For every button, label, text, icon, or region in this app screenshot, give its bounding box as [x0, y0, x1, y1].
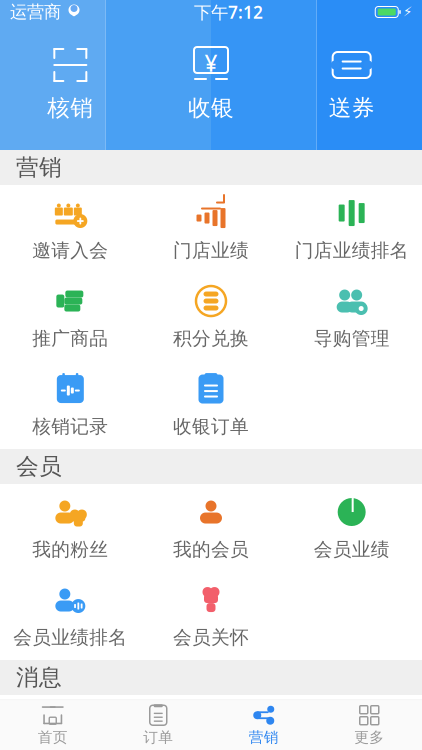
button[interactable]: 更多 — [316, 700, 422, 750]
staticText: 收银 — [188, 94, 234, 122]
staticText: 消息 — [16, 664, 62, 691]
staticText: 送券 — [329, 94, 375, 122]
button[interactable]: 积分兑换 — [141, 273, 281, 361]
staticText: 会员关怀 — [173, 626, 249, 649]
button[interactable]: 首页 — [0, 700, 105, 750]
button[interactable]: ¥ — [141, 40, 281, 128]
staticText: 积分兑换 — [173, 327, 249, 350]
staticText: 会员业绩 — [314, 538, 390, 561]
staticText: 核销记录 — [32, 415, 108, 438]
staticText: ⚡︎ — [403, 4, 412, 19]
button[interactable]: 门店业绩排名 — [281, 185, 422, 273]
staticText: ¥ — [204, 48, 217, 78]
button[interactable]: 收银订单 — [141, 361, 281, 449]
staticText: 会员业绩排名 — [13, 626, 127, 649]
staticText: 推广商品 — [32, 327, 108, 350]
staticText: 收银订单 — [173, 415, 249, 438]
staticText: 首页 — [38, 728, 68, 746]
button[interactable]: 导购管理 — [281, 273, 422, 361]
staticText: 更多 — [354, 728, 384, 746]
button[interactable]: 门店业绩 — [141, 185, 281, 273]
button[interactable]: 核销记录 — [0, 361, 141, 449]
button[interactable]: 送券 — [281, 40, 422, 128]
button[interactable]: 我的会员 — [141, 484, 281, 572]
staticText: 核销 — [47, 94, 93, 122]
button[interactable]: 推广商品 — [0, 273, 141, 361]
staticText: 会员 — [16, 453, 62, 480]
staticText: 我的会员 — [173, 538, 249, 561]
button[interactable]: 我的粉丝 — [0, 484, 141, 572]
staticText: 我的粉丝 — [32, 538, 108, 561]
button[interactable]: 订单 — [105, 700, 211, 750]
staticText: 营销 — [249, 728, 279, 746]
staticText: 订单 — [143, 728, 173, 746]
button[interactable]: 核销 — [0, 40, 141, 128]
staticText: 营销 — [16, 154, 62, 181]
staticText: 门店业绩 — [173, 239, 249, 262]
button[interactable]: 会员关怀 — [141, 572, 281, 660]
staticText: 门店业绩排名 — [295, 239, 409, 262]
staticText: 运营商 — [10, 1, 61, 23]
staticText: 邀请入会 — [32, 239, 108, 262]
button[interactable]: 邀请入会 — [0, 185, 141, 273]
staticText: 下午7:12 — [194, 0, 263, 23]
staticText: 导购管理 — [314, 327, 390, 350]
button[interactable]: 会员业绩排名 — [0, 572, 141, 660]
button[interactable]: 会员业绩 — [281, 484, 422, 572]
button[interactable]: 营销 — [211, 700, 316, 750]
